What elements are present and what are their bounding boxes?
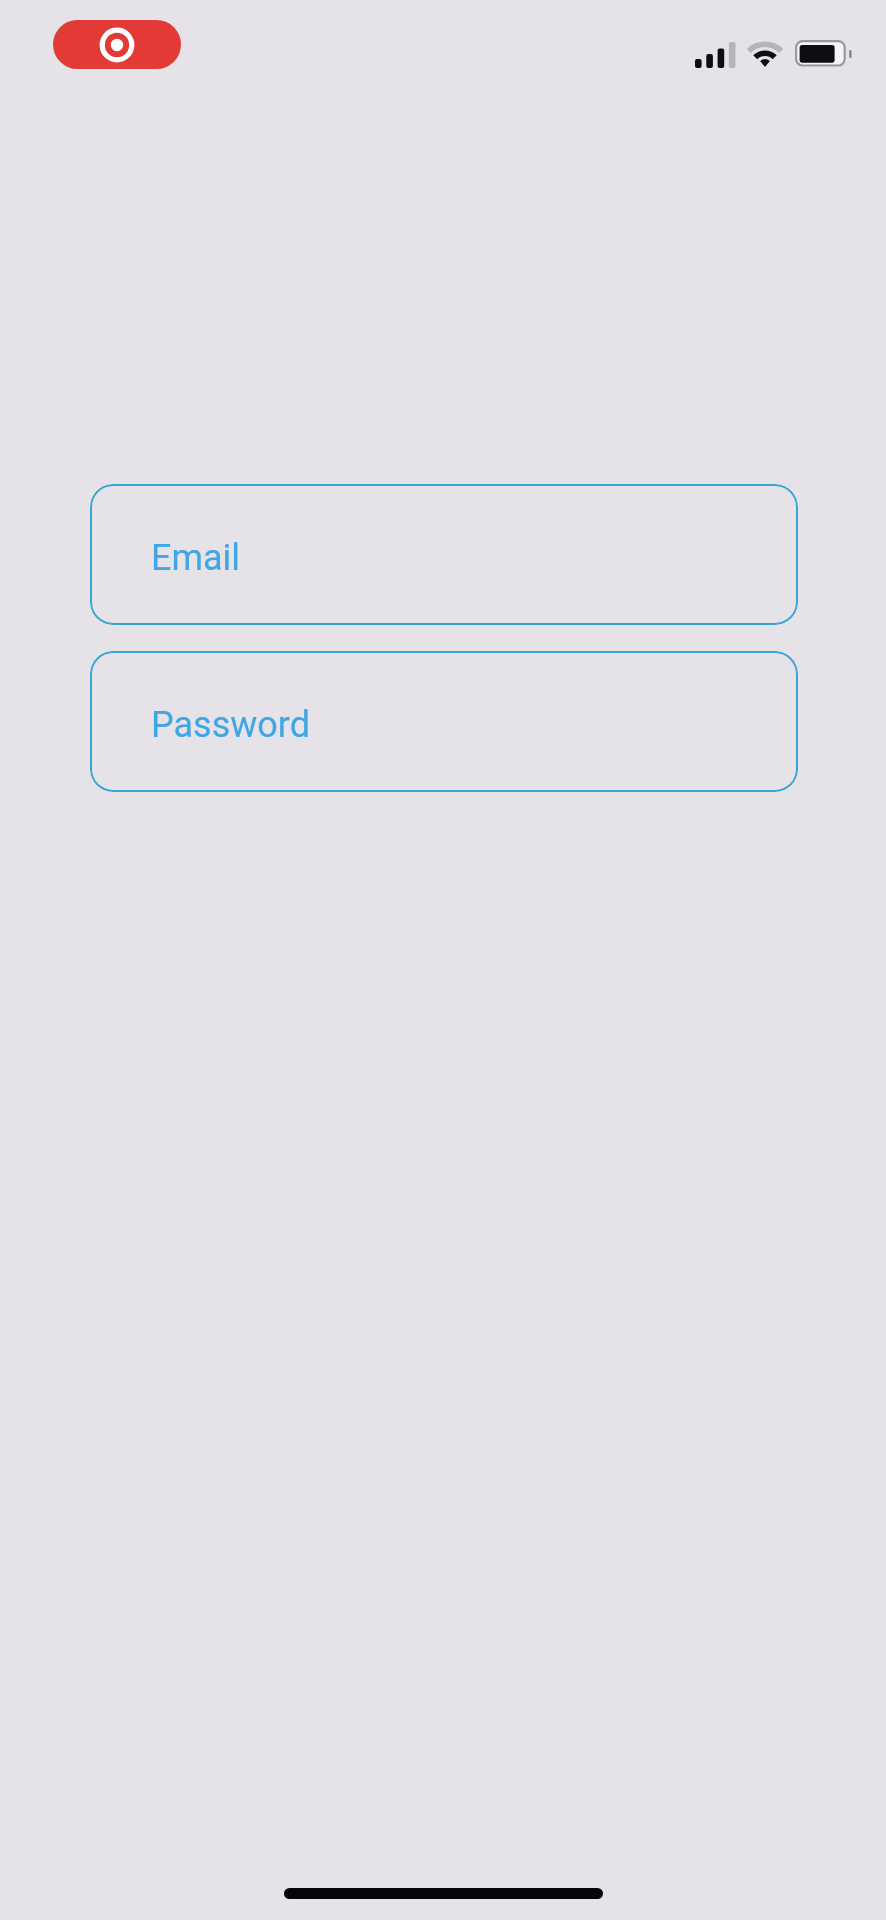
button[interactable]: Password (90, 651, 798, 792)
button[interactable]: Email (90, 484, 798, 625)
staticText: Password (151, 704, 311, 746)
staticText: Email (151, 537, 241, 579)
button[interactable]: Screen recording active (53, 20, 181, 69)
